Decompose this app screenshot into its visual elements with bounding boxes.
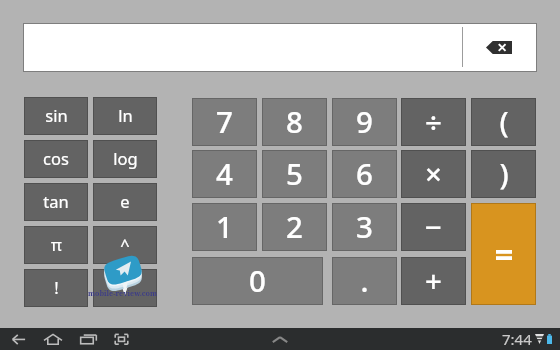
button[interactable]: . <box>332 257 397 305</box>
staticText: 7:44 <box>502 329 532 349</box>
button[interactable]: π <box>24 226 88 264</box>
button[interactable]: log <box>93 140 157 178</box>
button[interactable]: √ <box>93 269 157 307</box>
button[interactable]: ) <box>471 150 536 198</box>
button[interactable]: Backspace <box>463 32 535 63</box>
staticText: 3 <box>356 206 373 246</box>
button[interactable]: Expand status <box>270 332 290 346</box>
button[interactable]: ( <box>471 98 536 146</box>
staticText: ( <box>499 101 509 141</box>
button[interactable]: × <box>401 150 466 198</box>
button[interactable]: Recent apps <box>80 332 97 346</box>
staticText: 0 <box>249 260 266 300</box>
staticText: π <box>51 233 62 255</box>
staticText: × <box>425 153 442 193</box>
button[interactable]: − <box>401 203 466 251</box>
staticText: 8 <box>286 101 303 141</box>
staticText: 6 <box>356 153 373 193</box>
button[interactable]: 0 <box>192 257 323 305</box>
staticText: 4 <box>216 153 233 193</box>
button[interactable]: Back <box>12 332 28 346</box>
staticText: mobile-review.com <box>88 288 158 298</box>
staticText: ) <box>499 153 509 193</box>
button[interactable]: 7 <box>192 98 257 146</box>
button[interactable]: + <box>401 257 466 305</box>
button[interactable]: Home <box>43 332 63 346</box>
button[interactable]: ^ <box>93 226 157 264</box>
staticText: 5 <box>286 153 303 193</box>
button[interactable]: 8 <box>262 98 327 146</box>
staticText: ÷ <box>425 101 442 141</box>
staticText: 9 <box>356 101 373 141</box>
staticText: . <box>360 260 369 300</box>
staticText: − <box>425 206 442 246</box>
button[interactable]: 1 <box>192 203 257 251</box>
button[interactable]: ! <box>24 269 88 307</box>
staticText: ^ <box>120 233 130 255</box>
button[interactable]: e <box>93 183 157 221</box>
button[interactable]: 9 <box>332 98 397 146</box>
button[interactable]: sin <box>24 97 88 135</box>
staticText: tan <box>43 190 69 212</box>
staticText: ln <box>118 104 133 126</box>
button[interactable]: Equals <box>471 203 536 305</box>
button[interactable]: cos <box>24 140 88 178</box>
staticText: sin <box>45 104 68 126</box>
staticText: √ <box>120 278 131 297</box>
button[interactable]: 4 <box>192 150 257 198</box>
button[interactable]: 6 <box>332 150 397 198</box>
staticText: + <box>425 260 442 300</box>
staticText: ! <box>54 276 59 298</box>
button[interactable]: 3 <box>332 203 397 251</box>
staticText: cos <box>43 147 69 169</box>
button[interactable]: 5 <box>262 150 327 198</box>
staticText: e <box>120 190 130 212</box>
button[interactable]: ÷ <box>401 98 466 146</box>
button[interactable]: ln <box>93 97 157 135</box>
staticText: 7 <box>216 101 233 141</box>
staticText: 2 <box>286 206 303 246</box>
staticText: log <box>113 147 138 169</box>
button[interactable]: tan <box>24 183 88 221</box>
button[interactable]: Screenshot <box>114 332 129 346</box>
staticText: 1 <box>216 206 233 246</box>
button[interactable]: 2 <box>262 203 327 251</box>
